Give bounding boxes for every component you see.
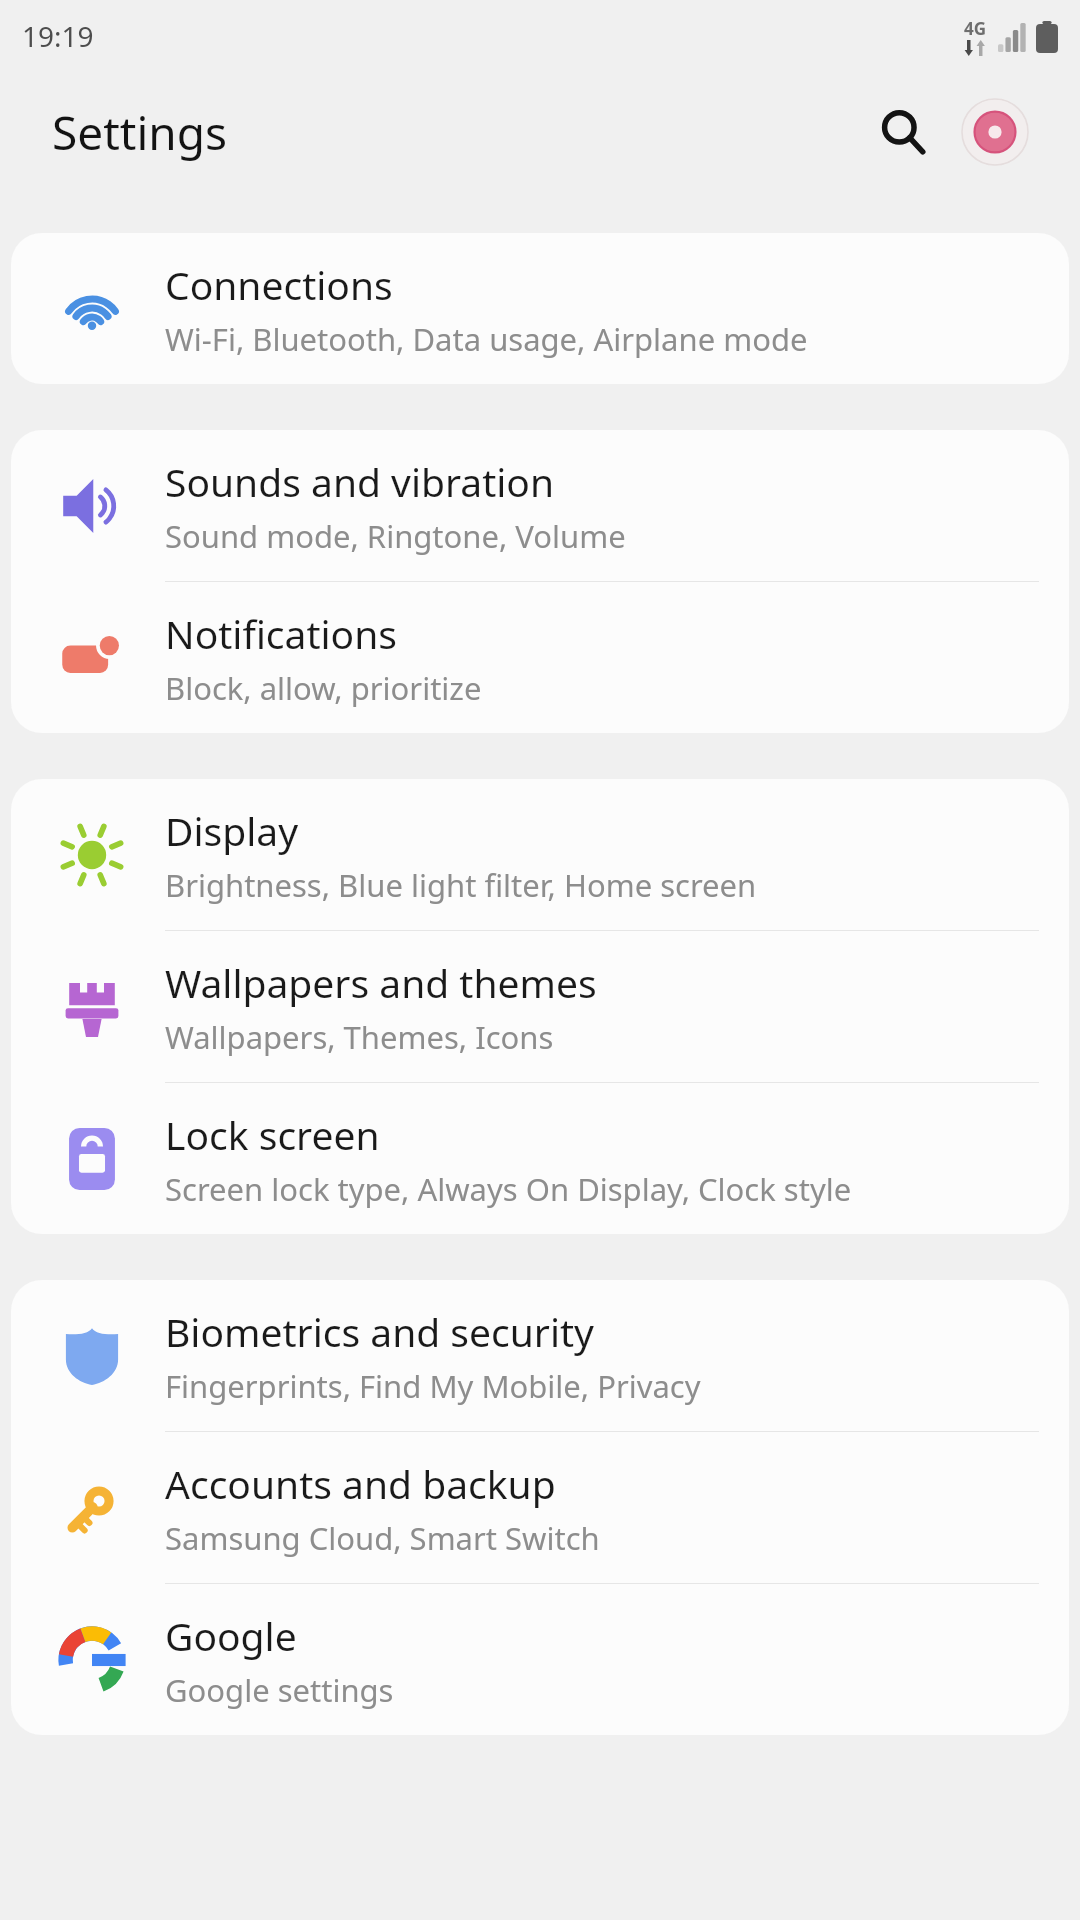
staticText: Screen lock type, Always On Display, Clo… — [165, 1168, 852, 1210]
button[interactable]: Accounts and backup — [11, 1432, 1069, 1583]
staticText: Brightness, Blue light filter, Home scre… — [165, 864, 757, 906]
button[interactable]: Biometrics and security — [11, 1280, 1069, 1431]
staticText: Wi-Fi, Bluetooth, Data usage, Airplane m… — [165, 318, 808, 360]
staticText: Google — [165, 1609, 297, 1662]
staticText: Wallpapers and themes — [165, 956, 597, 1009]
staticText: Block, allow, prioritize — [165, 667, 482, 709]
button[interactable]: Display — [11, 779, 1069, 930]
button[interactable]: Account — [954, 91, 1036, 173]
staticText: Sounds and vibration — [165, 455, 555, 508]
button[interactable]: Sounds and vibration — [11, 430, 1069, 581]
staticText: Google settings — [165, 1669, 394, 1711]
staticText: Sound mode, Ringtone, Volume — [165, 515, 626, 557]
staticText: Notifications — [165, 607, 397, 660]
button[interactable]: Google — [11, 1584, 1069, 1735]
staticText: 4G — [964, 17, 987, 40]
button[interactable]: Notifications — [11, 582, 1069, 733]
staticText: Fingerprints, Find My Mobile, Privacy — [165, 1365, 701, 1407]
staticText: Accounts and backup — [165, 1457, 556, 1510]
staticText: Display — [165, 804, 299, 857]
staticText: Connections — [165, 258, 393, 311]
button[interactable]: Lock screen — [11, 1083, 1069, 1234]
staticText: Settings — [52, 101, 228, 164]
staticText: Samsung Cloud, Smart Switch — [165, 1517, 600, 1559]
button[interactable]: Search — [862, 91, 944, 173]
staticText: Biometrics and security — [165, 1305, 595, 1358]
staticText: Lock screen — [165, 1108, 380, 1161]
staticText: 19:19 — [22, 17, 94, 55]
button[interactable]: Wallpapers and themes — [11, 931, 1069, 1082]
staticText: Wallpapers, Themes, Icons — [165, 1016, 554, 1058]
button[interactable]: Connections — [11, 233, 1069, 384]
